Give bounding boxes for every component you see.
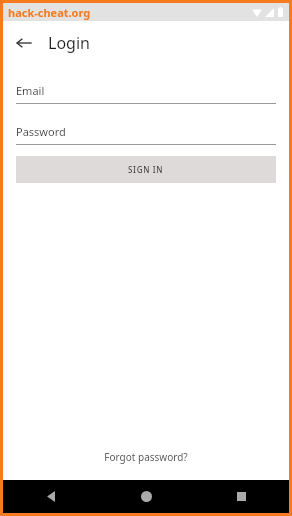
button[interactable]: Back: [3, 480, 99, 513]
button[interactable]: Email: [16, 83, 276, 104]
button[interactable]: Back: [9, 28, 39, 58]
button[interactable]: Forgot password?: [94, 447, 198, 467]
staticText: hack-cheat.org: [8, 5, 91, 20]
staticText: Forgot password?: [104, 450, 188, 464]
button[interactable]: Recent apps: [194, 480, 289, 513]
staticText: SIGN IN: [128, 164, 164, 175]
button[interactable]: Password: [16, 124, 276, 145]
staticText: Login: [48, 32, 90, 54]
button[interactable]: SIGN IN: [16, 156, 276, 183]
staticText: Email: [16, 83, 45, 98]
staticText: Password: [16, 124, 66, 139]
button[interactable]: Home: [99, 480, 194, 513]
